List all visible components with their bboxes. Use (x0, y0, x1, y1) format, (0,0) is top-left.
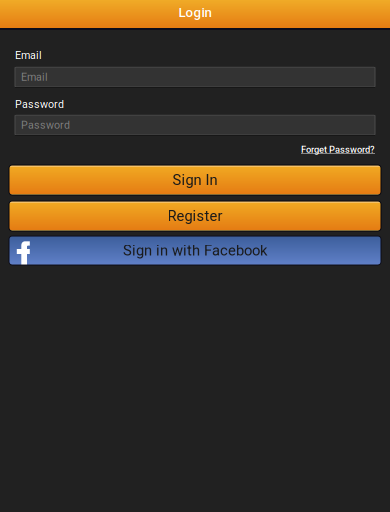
button[interactable]: Register (9, 201, 381, 231)
staticText: Sign In (172, 171, 217, 189)
staticText: Password (15, 98, 64, 110)
staticText: Login (178, 5, 211, 20)
staticText: Forget Password? (301, 144, 375, 155)
staticText: Sign in with Facebook (123, 242, 267, 259)
button[interactable]: Sign In (9, 165, 381, 195)
staticText: Email (21, 71, 48, 83)
button[interactable]: Forget Password? (301, 144, 375, 155)
staticText: Password (21, 119, 70, 131)
staticText: Email (15, 49, 42, 61)
staticText: Register (167, 207, 222, 225)
button[interactable]: Sign in with Facebook (9, 236, 381, 265)
